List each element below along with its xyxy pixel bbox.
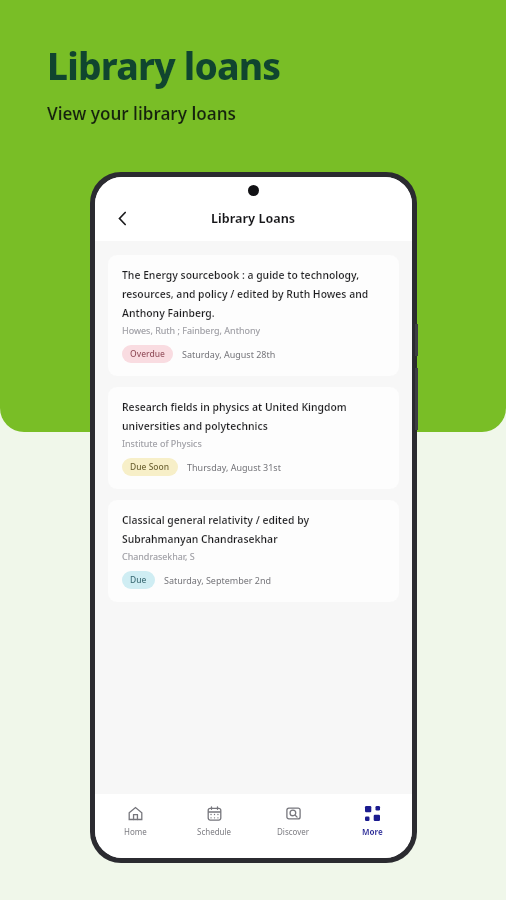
staticText: Overdue xyxy=(130,348,165,360)
button[interactable]: Research fields in physics at United Kin… xyxy=(108,387,399,489)
staticText: Institute of Physics xyxy=(122,437,202,449)
staticText: Thursday, August 31st xyxy=(187,461,281,473)
staticText: Schedule xyxy=(197,826,232,837)
staticText: More xyxy=(362,826,383,837)
staticText: Library Loans xyxy=(211,210,296,227)
button[interactable]: Classical general relativity / edited by… xyxy=(108,500,399,602)
button[interactable]: More xyxy=(333,794,412,858)
staticText: Saturday, September 2nd xyxy=(164,574,272,586)
staticText: Howes, Ruth ; Fainberg, Anthony xyxy=(122,324,261,336)
staticText: Classical general relativity / edited by… xyxy=(122,513,385,546)
staticText: Discover xyxy=(277,826,310,837)
button[interactable]: The Energy sourcebook : a guide to techn… xyxy=(108,255,399,376)
button[interactable]: Discover xyxy=(254,794,333,858)
staticText: Library loans xyxy=(47,40,281,90)
button[interactable]: Home xyxy=(95,794,175,858)
staticText: Due xyxy=(130,574,147,586)
button[interactable]: Schedule xyxy=(175,794,254,858)
staticText: Home xyxy=(124,826,147,837)
staticText: Research fields in physics at United Kin… xyxy=(122,400,385,433)
staticText: The Energy sourcebook : a guide to techn… xyxy=(122,268,385,320)
staticText: Due Soon xyxy=(130,461,170,473)
staticText: Saturday, August 28th xyxy=(182,348,276,360)
button[interactable]: Back xyxy=(103,199,141,237)
staticText: Chandrasekhar, S xyxy=(122,550,195,562)
staticText: View your library loans xyxy=(47,102,236,125)
